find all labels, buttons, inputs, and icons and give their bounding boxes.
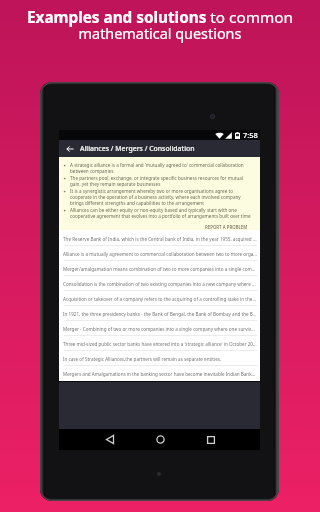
staticText: Merger/amalgamation means combination of… xyxy=(63,266,257,272)
staticText: Examples and solutions to common xyxy=(0,7,320,28)
button[interactable]: Alliance is a mutually agreement to comm… xyxy=(59,246,260,261)
staticText: Alliances can be either equity or non-eq… xyxy=(70,207,252,219)
button[interactable]: Merger/amalgamation means combination of… xyxy=(59,261,260,276)
button[interactable]: In 1921, the three presidency banks - th… xyxy=(59,306,260,321)
staticText: Consolidation is the combination of two … xyxy=(63,281,257,287)
button[interactable]: Merger - Combining of two or more compan… xyxy=(59,321,260,336)
staticText: Acquisition or takeover of a company ref… xyxy=(63,296,257,302)
button[interactable]: Back xyxy=(59,140,80,157)
button[interactable]: Recent apps xyxy=(200,429,221,450)
staticText: In 1921, the three presidency banks - th… xyxy=(63,311,257,317)
button[interactable]: In case of Strategic Alliances,the partn… xyxy=(59,351,260,366)
button[interactable]: Mergers and Amalgamations in the banking… xyxy=(59,366,260,381)
staticText: Mergers and Amalgamations in the banking… xyxy=(63,371,257,377)
staticText: The Reserve Bank of India, which is the … xyxy=(63,236,257,242)
staticText: mathematical questions xyxy=(0,24,320,44)
button[interactable]: Three mid-sized public sector banks have… xyxy=(59,336,260,351)
staticText: The partners pool, exchange, or integrat… xyxy=(70,175,252,187)
button[interactable]: Acquisition or takeover of a company ref… xyxy=(59,291,260,306)
staticText: Merger - Combining of two or more compan… xyxy=(63,326,257,332)
staticText: Alliance is a mutually agreement to comm… xyxy=(63,251,257,257)
staticText: Three mid-sized public sector banks have… xyxy=(63,341,257,347)
staticText: Alliances / Mergers / Consolidation xyxy=(80,144,195,153)
staticText: A strategic alliance is a formal and 'mu… xyxy=(70,162,252,174)
button[interactable]: REPORT A PROBLEM xyxy=(199,223,252,230)
button[interactable]: The Reserve Bank of India, which is the … xyxy=(59,231,260,246)
staticText: It is a synergistic arrangement whereby … xyxy=(70,188,252,206)
staticText: 7:58 xyxy=(243,130,258,140)
staticText: In case of Strategic Alliances,the partn… xyxy=(63,356,222,362)
button[interactable]: Home xyxy=(150,429,171,450)
button[interactable]: Back xyxy=(99,429,120,450)
button[interactable]: Consolidation is the combination of two … xyxy=(59,276,260,291)
